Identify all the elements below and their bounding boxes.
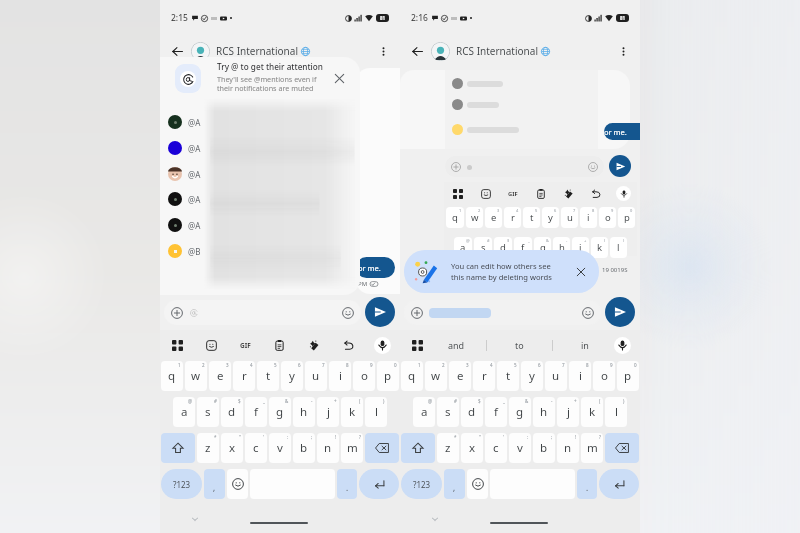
button[interactable]: 2 (425, 361, 447, 391)
button[interactable]: Hide keyboard (428, 512, 442, 526)
button[interactable]: Hide keyboard (188, 512, 202, 526)
button[interactable]: More options (372, 40, 394, 62)
button[interactable]: ; (293, 433, 315, 463)
button[interactable]: ; (533, 433, 555, 463)
button[interactable]: You can edit how others see this name by… (404, 250, 599, 293)
button[interactable]: Shift (401, 433, 435, 463)
button[interactable]: Enter (359, 469, 399, 499)
button[interactable]: 8 (569, 361, 591, 391)
button[interactable]: , (204, 469, 225, 499)
button[interactable]: * (437, 433, 459, 463)
button[interactable]: " (221, 433, 243, 463)
button[interactable]: 7 (305, 361, 327, 391)
button[interactable]: $ (461, 397, 483, 427)
button[interactable]: ( (581, 397, 603, 427)
button[interactable]: @B (160, 240, 360, 262)
button[interactable]: . (577, 469, 597, 499)
button[interactable]: ? (341, 433, 363, 463)
button[interactable] (164, 300, 361, 325)
button[interactable]: @A (160, 111, 360, 133)
button[interactable]: Apps (409, 337, 426, 354)
button[interactable]: 1 (161, 361, 183, 391)
button[interactable]: 3 (449, 361, 471, 391)
button[interactable]: Enter (599, 469, 639, 499)
button[interactable]: GIF (505, 186, 520, 201)
button[interactable]: ' (485, 433, 507, 463)
button[interactable]: ?123 (161, 469, 202, 499)
button[interactable]: Stickers (203, 337, 220, 354)
button[interactable]: 6 (521, 361, 543, 391)
button[interactable]: ? (581, 433, 603, 463)
button[interactable]: Magic (306, 337, 323, 354)
button[interactable]: Send (609, 155, 631, 177)
button[interactable]: Magic (561, 186, 576, 201)
button[interactable]: : (269, 433, 291, 463)
button[interactable]: @ (173, 397, 195, 427)
button[interactable]: Voice (616, 186, 631, 201)
button[interactable]: Backspace (605, 433, 639, 463)
button[interactable]: Undo (340, 337, 357, 354)
button[interactable]: Back (166, 40, 188, 62)
button[interactable]: " (461, 433, 483, 463)
button[interactable]: More options (612, 40, 634, 62)
button[interactable]: Backspace (365, 433, 399, 463)
button[interactable]: 1 (401, 361, 423, 391)
button[interactable]: # (197, 397, 219, 427)
button[interactable]: _ (245, 397, 267, 427)
button[interactable]: @A (160, 188, 360, 210)
button[interactable]: ' (245, 433, 267, 463)
button[interactable]: + (317, 397, 339, 427)
button[interactable]: ) (605, 397, 627, 427)
button[interactable]: Emoji (467, 469, 488, 499)
button[interactable]: ! (317, 433, 339, 463)
button[interactable]: Apps (169, 337, 186, 354)
button[interactable]: Shift (161, 433, 195, 463)
button[interactable]: 8 (329, 361, 351, 391)
button[interactable]: 9 (353, 361, 375, 391)
button[interactable]: 3 (209, 361, 231, 391)
button[interactable] (431, 42, 450, 61)
button[interactable]: 6 (281, 361, 303, 391)
button[interactable]: 4 (233, 361, 255, 391)
button[interactable]: 2 (185, 361, 207, 391)
button[interactable]: ) (365, 397, 387, 427)
button[interactable]: & (509, 397, 531, 427)
button[interactable]: + (557, 397, 579, 427)
button[interactable]: Dismiss (329, 68, 349, 88)
button[interactable]: 5 (497, 361, 519, 391)
button[interactable]: Send (605, 297, 635, 327)
button[interactable]: Clipboard (271, 337, 288, 354)
button[interactable] (404, 300, 601, 325)
button[interactable]: Dismiss tip (573, 264, 589, 280)
button[interactable] (160, 57, 360, 295)
button[interactable]: * (197, 433, 219, 463)
button[interactable]: 9 (593, 361, 615, 391)
button[interactable]: @A (160, 163, 360, 185)
button[interactable]: Voice (614, 337, 631, 354)
button[interactable]: Stickers (478, 186, 493, 201)
button[interactable]: Apps (450, 186, 465, 201)
button[interactable]: ! (557, 433, 579, 463)
button[interactable]: 5 (257, 361, 279, 391)
button[interactable]: , (444, 469, 465, 499)
button[interactable]: Send (365, 297, 395, 327)
button[interactable]: Emoji (227, 469, 248, 499)
button[interactable]: Clipboard (533, 186, 548, 201)
button[interactable]: 0 (617, 361, 639, 391)
button[interactable]: & (269, 397, 291, 427)
button[interactable]: 0 (377, 361, 399, 391)
button[interactable]: @A (160, 214, 360, 236)
button[interactable]: _ (485, 397, 507, 427)
button[interactable]: # (437, 397, 459, 427)
button[interactable]: Undo (588, 186, 603, 201)
button[interactable]: Voice (374, 337, 391, 354)
button[interactable]: . (337, 469, 357, 499)
button[interactable]: Back (406, 40, 428, 62)
button[interactable]: 4 (473, 361, 495, 391)
button[interactable]: GIF (237, 337, 254, 354)
button[interactable] (191, 42, 210, 61)
button[interactable]: - (533, 397, 555, 427)
button[interactable]: - (293, 397, 315, 427)
